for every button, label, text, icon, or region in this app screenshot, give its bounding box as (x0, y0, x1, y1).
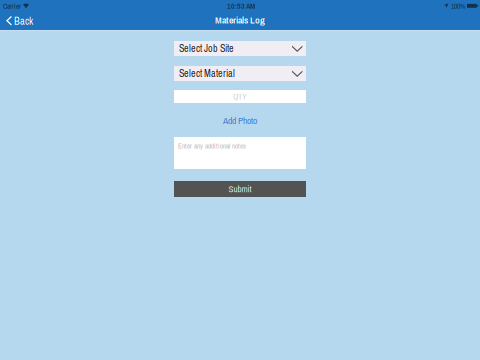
staticText: 10:53 AM (227, 1, 255, 11)
staticText: Submit (228, 183, 251, 195)
staticText: Select Job Site (179, 42, 234, 55)
button[interactable]: Add Photo (210, 115, 270, 126)
staticText: Select Material (179, 67, 235, 80)
button[interactable]: Back (0, 12, 39, 30)
button[interactable]: Select Job Site (174, 41, 306, 56)
staticText: 100% (451, 1, 465, 11)
button[interactable]: Enter any additional notes (174, 137, 306, 169)
staticText: Carrier (3, 1, 21, 11)
button[interactable]: Submit (174, 181, 306, 197)
staticText: Add Photo (223, 114, 257, 127)
staticText: Enter any additional notes (178, 141, 246, 151)
staticText: Back (14, 14, 33, 28)
button[interactable]: QTY (174, 90, 306, 103)
staticText: Materials Log (215, 13, 265, 27)
button[interactable]: Select Material (174, 66, 306, 81)
staticText: QTY (233, 91, 247, 102)
